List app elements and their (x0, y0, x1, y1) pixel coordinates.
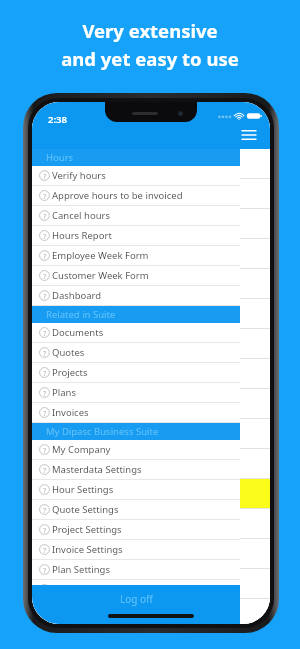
staticText: Week (207, 180, 236, 194)
button[interactable]: ? (32, 246, 240, 265)
button[interactable]: Week (32, 329, 270, 358)
staticText: ? (43, 291, 47, 301)
button[interactable]: Week (32, 179, 270, 208)
staticText: Week (207, 240, 236, 254)
button[interactable]: ? (32, 460, 240, 479)
staticText: My Company (52, 443, 111, 456)
button[interactable]: ? (32, 363, 240, 382)
staticText: Quote Settings (52, 503, 119, 516)
button[interactable]: Week (32, 239, 270, 268)
staticText: Dashboard (52, 289, 102, 302)
button[interactable]: ? (32, 186, 240, 205)
staticText: ? (43, 191, 47, 201)
staticText: Feb 18, (207, 495, 236, 507)
button[interactable]: Week (32, 149, 270, 178)
staticText: Week (207, 300, 236, 314)
button[interactable]: Log off (32, 585, 240, 624)
button[interactable]: Open menu (237, 123, 261, 147)
staticText: ? (43, 271, 47, 281)
staticText: Week (207, 510, 236, 524)
staticText: Masterdata Settings (52, 463, 142, 476)
staticText: ? (43, 525, 47, 535)
staticText: Hours (46, 151, 74, 164)
button[interactable]: ? (32, 286, 240, 305)
staticText: ? (43, 251, 47, 261)
button[interactable]: ? (32, 343, 240, 362)
staticText: Plan Settings (52, 563, 111, 576)
button[interactable]: Week (32, 209, 270, 238)
button[interactable]: ? (32, 383, 240, 402)
staticText: Invoices (52, 406, 89, 419)
button[interactable]: Week (32, 299, 270, 328)
staticText: Dec 3, (207, 165, 232, 177)
staticText: Week (207, 420, 236, 434)
button[interactable]: ? (32, 206, 240, 225)
button[interactable]: Week (32, 569, 270, 598)
button[interactable]: ? (32, 166, 240, 185)
staticText: 2:38 (48, 113, 67, 126)
button[interactable]: ? (32, 480, 240, 499)
button[interactable]: ? (32, 266, 240, 285)
button[interactable]: ? (32, 226, 240, 245)
button[interactable]: Week (32, 449, 270, 478)
staticText: Approve hours to be invoiced (52, 189, 183, 202)
staticText: Verify hours (52, 169, 106, 182)
staticText: Invoice Settings (52, 543, 123, 556)
staticText: ? (43, 465, 47, 475)
button[interactable]: ? (32, 560, 240, 579)
staticText: My Dipasc Business Suite (46, 425, 159, 438)
staticText: Customer Week Form (52, 269, 149, 282)
staticText: ? (43, 348, 47, 358)
staticText: Dec 31 (207, 285, 234, 297)
button[interactable]: Week (32, 509, 270, 538)
staticText: Dec 10 (207, 195, 234, 207)
button[interactable]: ? (32, 323, 240, 342)
button[interactable]: Week (32, 479, 270, 508)
staticText: My Settings (52, 583, 105, 596)
staticText: ? (43, 328, 47, 338)
staticText: Feb 4, (207, 435, 231, 447)
staticText: ? (43, 445, 47, 455)
button[interactable]: Week (32, 389, 270, 418)
staticText: ? (43, 388, 47, 398)
staticText: ? (43, 485, 47, 495)
button[interactable]: ? (32, 540, 240, 559)
button[interactable]: ? (32, 500, 240, 519)
button[interactable]: ? (32, 520, 240, 539)
staticText: Week (207, 570, 236, 584)
staticText: and yet easy to use (61, 46, 239, 71)
button[interactable]: Week (32, 359, 270, 388)
staticText: Quotes (52, 346, 85, 359)
staticText: Dec 17 (207, 225, 234, 237)
staticText: Week (207, 450, 236, 464)
staticText: ? (43, 211, 47, 221)
button[interactable]: Week (32, 539, 270, 568)
staticText: Project Settings (52, 523, 122, 536)
staticText: Week (207, 390, 236, 404)
button[interactable]: Week (32, 269, 270, 298)
staticText: ? (43, 368, 47, 378)
button[interactable]: ? (32, 580, 240, 599)
staticText: Hours Report (52, 229, 112, 242)
button[interactable]: ? (32, 440, 240, 459)
staticText: Very extensive (82, 18, 218, 43)
staticText: Jan 7, (207, 315, 232, 327)
staticText: Hour Settings (52, 483, 114, 496)
button[interactable]: ? (32, 403, 240, 422)
staticText: Plans (52, 386, 76, 399)
button[interactable]: Week (32, 419, 270, 448)
staticText: ? (43, 408, 47, 418)
staticText: Projects (52, 366, 88, 379)
staticText: Week (207, 360, 236, 374)
button[interactable]: Week (32, 599, 270, 624)
